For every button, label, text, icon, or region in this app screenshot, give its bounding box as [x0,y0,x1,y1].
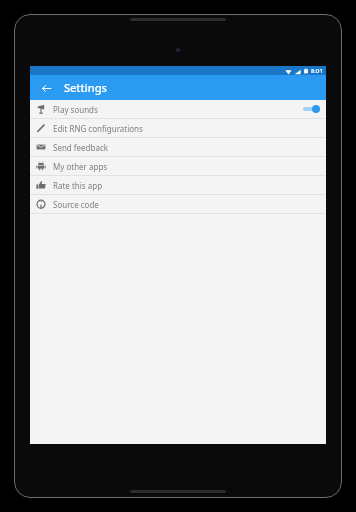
staticText: Play sounds [53,104,98,115]
button[interactable]: Send feedback [30,138,326,156]
button[interactable]: Source code [30,195,326,213]
button[interactable]: Rate this app [30,176,326,194]
button[interactable]: My other apps [30,157,326,175]
staticText: Edit RNG configurations [53,123,143,134]
button[interactable]: Navigate up [36,78,56,98]
staticText: Source code [53,199,99,210]
staticText: My other apps [53,161,108,172]
staticText: 8:01 [311,67,323,75]
staticText: Rate this app [53,180,103,191]
staticText: Settings [64,80,107,95]
button[interactable]: Play sounds toggle [302,103,320,115]
button[interactable]: Edit RNG configurations [30,119,326,137]
staticText: Send feedback [53,142,109,153]
button[interactable]: Play sounds [30,100,326,118]
